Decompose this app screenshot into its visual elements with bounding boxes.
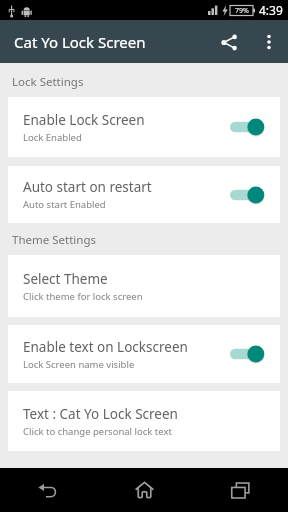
button[interactable]: Back xyxy=(0,468,96,512)
button[interactable]: Enable text on Lockscreen xyxy=(8,325,280,383)
staticText: Lock Screen name visible xyxy=(23,358,135,371)
staticText: Auto start Enabled xyxy=(23,198,106,211)
button[interactable]: More options xyxy=(250,23,288,61)
button[interactable]: Enable Lock Screen xyxy=(8,97,280,157)
button[interactable]: Toggle Auto start on restart xyxy=(226,182,270,208)
staticText: Enable text on Lockscreen xyxy=(23,338,188,356)
staticText: 79% xyxy=(235,6,249,16)
button[interactable]: Recent apps xyxy=(192,468,288,512)
button[interactable]: Home xyxy=(96,468,192,512)
staticText: 4:39 xyxy=(259,2,283,18)
button[interactable]: Select Theme xyxy=(8,255,280,317)
button[interactable]: Toggle Enable Lock Screen xyxy=(226,114,270,140)
button[interactable]: Auto start on restart xyxy=(8,166,280,223)
staticText: Click theme for lock screen xyxy=(23,290,143,303)
button[interactable]: Text : Cat Yo Lock Screen xyxy=(8,391,280,451)
staticText: Cat Yo Lock Screen xyxy=(14,32,146,52)
staticText: Lock Settings xyxy=(12,74,84,90)
button[interactable]: Toggle Enable text on Lockscreen xyxy=(226,341,270,367)
staticText: Lock Enabled xyxy=(23,131,82,144)
staticText: Click to change personal lock text xyxy=(23,425,172,438)
staticText: Text : Cat Yo Lock Screen xyxy=(23,405,178,423)
staticText: Select Theme xyxy=(23,270,108,288)
button[interactable]: Share xyxy=(208,21,250,63)
staticText: Theme Settings xyxy=(12,232,96,248)
staticText: Enable Lock Screen xyxy=(23,111,145,129)
staticText: Auto start on restart xyxy=(23,178,152,196)
